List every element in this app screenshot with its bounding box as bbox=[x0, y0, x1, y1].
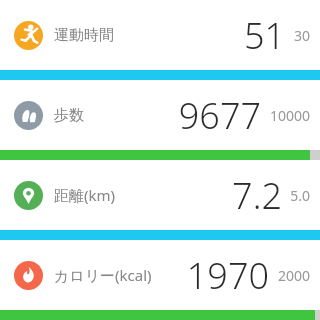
other: Steps bbox=[14, 101, 43, 130]
button[interactable]: Calories bbox=[0, 240, 320, 320]
other: Calories bbox=[14, 261, 43, 290]
button[interactable]: Distance bbox=[0, 160, 320, 240]
other: Exercise time bbox=[14, 21, 43, 50]
staticText: 7.2 bbox=[232, 171, 282, 220]
staticText: 歩数 bbox=[54, 106, 84, 125]
staticText: 9677 bbox=[178, 91, 261, 140]
staticText: 51 bbox=[243, 11, 285, 60]
staticText: 10000 bbox=[269, 106, 310, 125]
button[interactable]: Steps bbox=[0, 80, 320, 160]
staticText: 1970 bbox=[186, 251, 269, 300]
staticText: 距離(km) bbox=[54, 185, 116, 205]
staticText: 運動時間 bbox=[54, 26, 114, 45]
other: Distance bbox=[14, 181, 43, 210]
staticText: 5.0 bbox=[290, 186, 310, 205]
button[interactable]: Exercise time bbox=[0, 0, 320, 80]
staticText: 30 bbox=[293, 26, 310, 45]
staticText: カロリー(kcal) bbox=[54, 265, 152, 285]
staticText: 2000 bbox=[277, 266, 310, 285]
